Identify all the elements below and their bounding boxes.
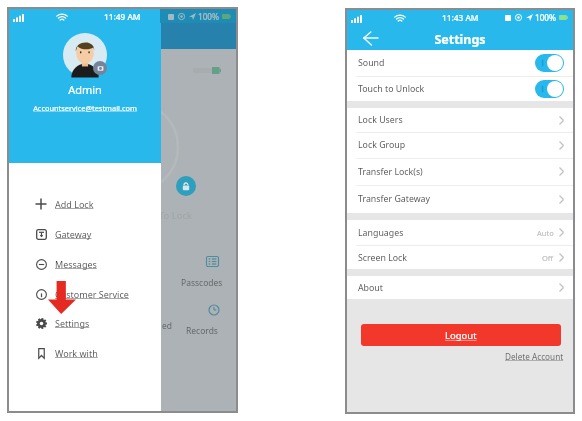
- button[interactable]: Logout: [361, 324, 561, 346]
- button[interactable]: Delete Account: [505, 351, 564, 362]
- button[interactable]: Messages: [9, 252, 161, 276]
- staticText: Logout: [445, 329, 477, 342]
- staticText: Work with: [55, 347, 98, 359]
- staticText: Lock Users: [358, 114, 403, 126]
- button[interactable]: Languages: [347, 220, 573, 245]
- button[interactable]: Add Lock: [9, 192, 161, 216]
- button[interactable]: Records: [186, 304, 218, 316]
- button[interactable]: Lock Users: [347, 108, 573, 132]
- button[interactable]: Gateway: [9, 222, 161, 246]
- staticText: Off: [542, 253, 554, 263]
- staticText: Accountservice@testmail.com: [9, 103, 161, 113]
- staticText: 100%: [198, 11, 220, 22]
- button[interactable]: Settings: [9, 311, 161, 335]
- staticText: Settings: [55, 317, 90, 329]
- staticText: Screen Lock: [358, 252, 408, 264]
- staticText: Sound: [358, 57, 385, 69]
- staticText: Auto: [537, 228, 554, 238]
- staticText: To Lock: [159, 209, 193, 222]
- staticText: Admin: [9, 82, 161, 97]
- staticText: Languages: [358, 227, 404, 239]
- button[interactable]: Passcodes: [181, 256, 223, 268]
- button[interactable]: Lock Group: [347, 132, 573, 158]
- button[interactable]: Transfer Lock(s): [347, 158, 573, 185]
- button[interactable]: About: [347, 276, 573, 299]
- staticText: Add Lock: [55, 198, 94, 210]
- button[interactable]: Screen Lock: [347, 245, 573, 270]
- staticText: Lock Group: [358, 139, 406, 151]
- staticText: Passcodes: [181, 277, 223, 289]
- staticText: 11:49 AM: [104, 11, 141, 22]
- staticText: Touch to Unlock: [358, 83, 425, 95]
- button[interactable]: Sound: [347, 50, 573, 76]
- staticText: Gateway: [55, 228, 92, 240]
- button[interactable]: Transfer Gateway: [347, 185, 573, 213]
- staticText: About: [358, 282, 383, 294]
- button[interactable]: Touch to Unlock: [347, 76, 573, 102]
- staticText: Transfer Gateway: [358, 193, 431, 205]
- button[interactable]: Work with: [9, 341, 161, 365]
- staticText: Messages: [55, 258, 97, 270]
- staticText: Records: [186, 325, 218, 337]
- button[interactable]: Customer Service: [9, 282, 161, 306]
- button[interactable]: Lock: [176, 176, 196, 196]
- staticText: Settings: [347, 31, 573, 48]
- staticText: 100%: [535, 12, 557, 23]
- staticText: 11:43 AM: [442, 12, 479, 23]
- staticText: Customer Service: [55, 288, 129, 300]
- button[interactable]: Back: [359, 27, 381, 49]
- staticText: Transfer Lock(s): [358, 166, 423, 178]
- staticText: ed: [162, 320, 173, 332]
